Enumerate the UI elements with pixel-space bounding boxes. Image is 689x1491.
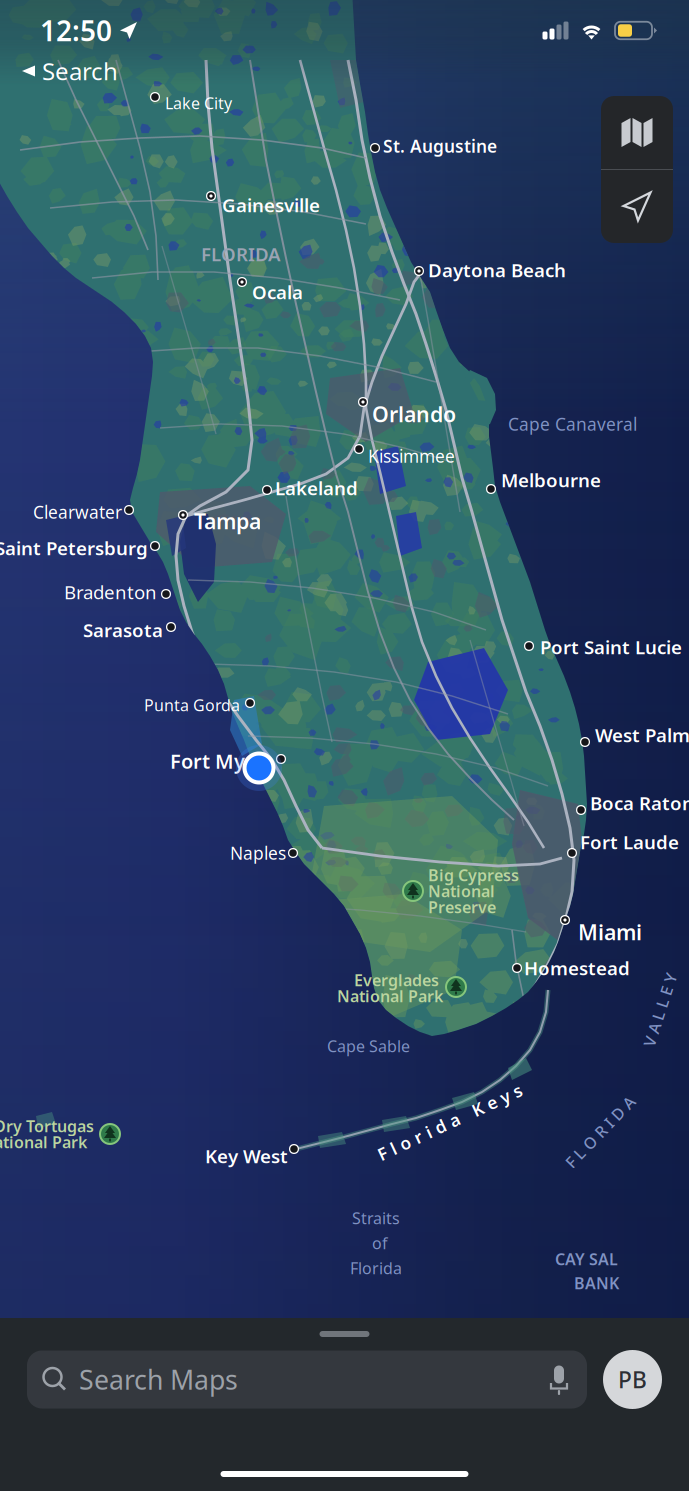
button[interactable]: Search Maps xyxy=(27,1350,587,1408)
staticText: 12:50 xyxy=(40,12,112,49)
staticText: Everglades xyxy=(354,969,439,991)
staticText: St. Augustine xyxy=(383,134,497,157)
button[interactable]: Profile xyxy=(603,1350,662,1409)
staticText: Gainesville xyxy=(222,193,320,217)
staticText: Port Saint Lucie xyxy=(540,635,682,659)
staticText: Sarasota xyxy=(83,618,163,642)
staticText: CAY SAL xyxy=(555,1248,618,1270)
staticText: Bradenton xyxy=(64,580,157,604)
staticText: F l o r i d a K e y s xyxy=(371,1110,529,1133)
staticText: Orlando xyxy=(372,400,456,428)
button[interactable]: Map type xyxy=(601,96,673,169)
staticText: Naples xyxy=(230,841,286,864)
staticText: Fort Laude xyxy=(580,830,679,854)
staticText: Florida xyxy=(350,1257,402,1279)
staticText: National xyxy=(428,880,495,902)
staticText: FLORIDA xyxy=(201,242,281,266)
staticText: Clearwater xyxy=(33,500,122,523)
staticText: Kissimmee xyxy=(368,444,455,467)
staticText: V A L L E Y xyxy=(622,999,689,1021)
staticText: PB xyxy=(618,1364,647,1394)
staticText: Boca Raton xyxy=(590,791,689,815)
staticText: Cape Canaveral xyxy=(508,412,637,435)
staticText: Search xyxy=(42,55,118,87)
staticText: Preserve xyxy=(428,896,496,918)
staticText: BANK xyxy=(574,1272,619,1294)
staticText: Tampa xyxy=(194,507,261,535)
staticText: Search Maps xyxy=(79,1362,238,1397)
staticText: F L O R I D A xyxy=(554,1121,646,1143)
button[interactable]: Search xyxy=(0,56,132,86)
staticText: Cape Sable xyxy=(327,1035,410,1057)
staticText: Punta Gorda xyxy=(144,694,240,716)
staticText: Ocala xyxy=(252,280,303,304)
button[interactable]: Current location xyxy=(601,170,673,243)
staticText: ational Park xyxy=(0,1131,87,1153)
staticText: Homestead xyxy=(524,956,630,980)
staticText: of xyxy=(372,1232,388,1254)
staticText: National Park xyxy=(337,985,443,1007)
staticText: Fort My xyxy=(170,748,245,774)
staticText: Key West xyxy=(205,1144,288,1168)
staticText: Lakeland xyxy=(275,476,358,500)
staticText: Melbourne xyxy=(501,468,601,492)
staticText: Big Cypress xyxy=(428,864,519,886)
staticText: Lake City xyxy=(165,92,232,114)
staticText: Daytona Beach xyxy=(428,258,566,282)
staticText: Saint Petersburg xyxy=(0,536,148,560)
staticText: West Palm xyxy=(595,723,689,747)
staticText: Straits xyxy=(352,1207,400,1229)
staticText: Dry Tortugas xyxy=(0,1115,94,1137)
staticText: Miami xyxy=(578,918,642,946)
